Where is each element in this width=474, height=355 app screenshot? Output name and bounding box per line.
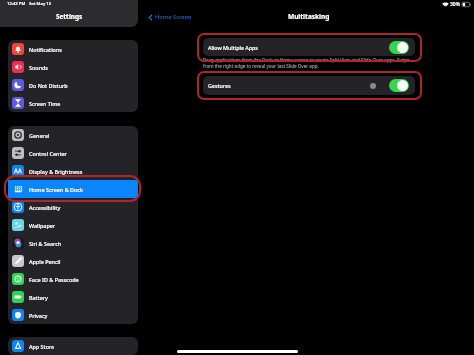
staticText: Gestures: [208, 82, 231, 89]
button[interactable]: Toggle on: [389, 41, 409, 54]
staticText: Accessibility: [29, 204, 61, 211]
staticText: Notifications: [29, 46, 62, 53]
staticText: General: [29, 132, 50, 139]
button[interactable]: Apple Pencil: [8, 252, 138, 270]
staticText: Apple Pencil: [29, 258, 61, 265]
staticText: Siri & Search: [29, 240, 62, 247]
staticText: Sat May 15: [29, 1, 52, 7]
staticText: Face ID & Passcode: [29, 276, 79, 283]
staticText: App Store: [29, 343, 55, 350]
staticText: Screen Time: [29, 100, 61, 107]
button[interactable]: Screen Time: [8, 94, 138, 112]
button[interactable]: Wallpaper: [8, 216, 138, 234]
staticText: Drag applications from the Dock or Home …: [203, 57, 410, 63]
staticText: Control Center: [29, 150, 67, 157]
staticText: Allow Multiple Apps: [208, 44, 258, 51]
button[interactable]: Sounds: [8, 58, 138, 76]
button[interactable]: Allow Multiple Apps: [203, 38, 415, 56]
button[interactable]: Face ID & Passcode: [8, 270, 138, 288]
button[interactable]: Siri & Search: [8, 234, 138, 252]
button[interactable]: Home Screen & Dock: [8, 180, 138, 198]
button[interactable]: App Store: [8, 337, 138, 355]
button[interactable]: Privacy: [8, 306, 138, 324]
staticText: Sounds: [29, 64, 48, 71]
staticText: Do Not Disturb: [29, 82, 68, 89]
button[interactable]: Accessibility: [8, 198, 138, 216]
button[interactable]: Gestures: [203, 76, 415, 95]
staticText: from the right edge to reveal your last …: [203, 63, 319, 69]
button[interactable]: General: [8, 126, 138, 144]
staticText: Privacy: [29, 312, 48, 319]
staticText: 30%: [450, 1, 461, 8]
staticText: Home Screen & Dock: [29, 186, 83, 193]
button[interactable]: Notifications: [8, 40, 138, 58]
button[interactable]: Battery: [8, 288, 138, 306]
staticText: Home Screen: [155, 13, 192, 21]
staticText: Wallpaper: [29, 222, 56, 229]
button[interactable]: Display & Brightness: [8, 162, 138, 180]
staticText: 12:42 PM: [7, 1, 26, 7]
button[interactable]: Toggle on: [389, 79, 409, 92]
button[interactable]: Control Center: [8, 144, 138, 162]
button[interactable]: Do Not Disturb: [8, 76, 138, 94]
staticText: Display & Brightness: [29, 168, 83, 175]
staticText: Battery: [29, 294, 48, 301]
button[interactable]: Home Screen: [146, 11, 194, 23]
staticText: Multitasking: [288, 12, 330, 21]
staticText: Settings: [56, 12, 83, 21]
